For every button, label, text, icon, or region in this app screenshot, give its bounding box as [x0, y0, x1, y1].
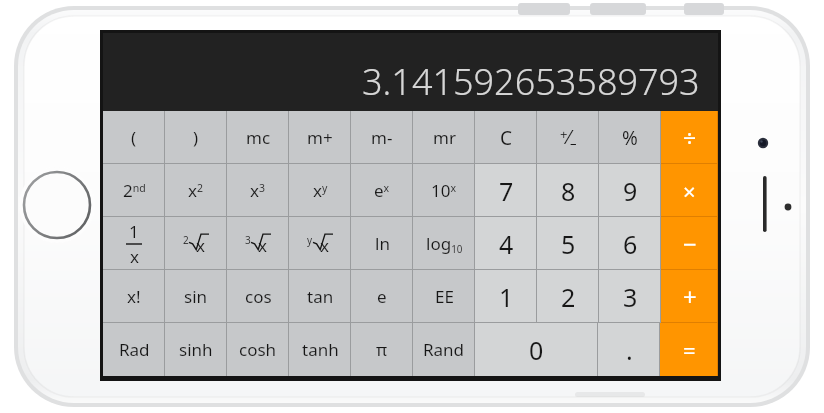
staticText: ÷ [683, 122, 697, 153]
staticText: xy [313, 179, 328, 202]
button[interactable]: EE [413, 270, 475, 323]
staticText: cosh [239, 338, 277, 361]
staticText: ex [374, 179, 390, 202]
staticText: 3 [623, 280, 638, 314]
button[interactable]: e [351, 270, 413, 323]
staticText: tanh [302, 338, 339, 361]
staticText: Rad [119, 338, 150, 361]
staticText: x! [127, 285, 141, 308]
button[interactable]: 10x [413, 164, 475, 217]
staticText: Rand [423, 338, 465, 361]
button[interactable]: × [661, 164, 718, 217]
staticText: × [683, 176, 696, 206]
button[interactable]: log10 [413, 217, 475, 270]
staticText: log10 [426, 232, 463, 256]
button[interactable]: ln [351, 217, 413, 270]
button[interactable]: cos [227, 270, 289, 323]
button[interactable]: 6 [599, 217, 661, 270]
staticText: sin [184, 285, 208, 308]
button[interactable]: cosh [227, 323, 289, 376]
staticText: % [622, 125, 638, 151]
button[interactable]: ex [351, 164, 413, 217]
staticText: mc [246, 126, 271, 149]
button[interactable]: 2 [165, 217, 227, 270]
staticText: EE [435, 285, 454, 308]
button[interactable]: mc [227, 111, 289, 164]
button[interactable]: ( [103, 111, 165, 164]
button[interactable]: y [289, 217, 351, 270]
button[interactable]: ) [165, 111, 227, 164]
button[interactable]: 5 [537, 217, 599, 270]
button[interactable]: − [661, 217, 718, 270]
button[interactable]: +⁄– [537, 111, 599, 164]
staticText: = [683, 335, 696, 365]
button[interactable]: x! [103, 270, 165, 323]
staticText: m+ [307, 126, 333, 149]
button[interactable]: 0 [475, 323, 598, 376]
button[interactable]: mr [413, 111, 475, 164]
staticText: . [626, 333, 633, 367]
staticText: 3.141592653589793 [362, 57, 700, 106]
button[interactable]: m+ [289, 111, 351, 164]
staticText: C [500, 125, 513, 151]
button[interactable]: . [598, 323, 660, 376]
staticText: 4 [499, 227, 514, 261]
button[interactable]: sin [165, 270, 227, 323]
staticText: 2 [561, 280, 576, 314]
button[interactable]: 8 [537, 164, 599, 217]
staticText: y [307, 233, 313, 247]
button[interactable]: Rand [413, 323, 475, 376]
staticText: − [683, 227, 697, 260]
button[interactable]: Rad [103, 323, 165, 376]
staticText: 1 [499, 280, 514, 314]
staticText: +⁄– [560, 124, 577, 152]
staticText: sinh [179, 338, 213, 361]
button[interactable]: sinh [165, 323, 227, 376]
staticText: ln [375, 232, 390, 255]
staticText: π [376, 338, 388, 361]
button[interactable]: 4 [475, 217, 537, 270]
button[interactable]: x2 [165, 164, 227, 217]
staticText: mr [433, 126, 456, 149]
staticText: x [320, 234, 329, 257]
button[interactable]: % [599, 111, 661, 164]
button[interactable]: 9 [599, 164, 661, 217]
staticText: x2 [188, 179, 204, 202]
button[interactable]: 7 [475, 164, 537, 217]
staticText: 8 [561, 174, 576, 208]
staticText: tan [307, 285, 334, 308]
staticText: 2 [183, 233, 189, 247]
staticText: x [130, 245, 139, 268]
staticText: 9 [623, 174, 638, 208]
staticText: x3 [250, 179, 266, 202]
button[interactable]: 2 [537, 270, 599, 323]
staticText: cos [245, 285, 272, 308]
staticText: e [377, 285, 387, 308]
button[interactable]: tanh [289, 323, 351, 376]
staticText: ) [193, 126, 199, 149]
button[interactable]: tan [289, 270, 351, 323]
button[interactable]: 3 [599, 270, 661, 323]
button[interactable]: C [475, 111, 537, 164]
staticText: + [683, 280, 697, 313]
staticText: 7 [499, 174, 514, 208]
staticText: m- [371, 126, 393, 149]
button[interactable]: 1 [103, 217, 165, 270]
button[interactable]: xy [289, 164, 351, 217]
button[interactable]: m- [351, 111, 413, 164]
button[interactable]: 2nd [103, 164, 165, 217]
button[interactable]: + [661, 270, 718, 323]
button[interactable]: ÷ [661, 111, 718, 164]
button[interactable]: 1 [475, 270, 537, 323]
button[interactable]: = [660, 323, 718, 376]
staticText: 1 [129, 220, 139, 243]
staticText: ( [131, 126, 137, 149]
button[interactable]: π [351, 323, 413, 376]
staticText: 6 [623, 227, 638, 261]
staticText: 5 [561, 227, 576, 261]
staticText: x [258, 234, 267, 257]
staticText: 3 [245, 233, 251, 247]
button[interactable]: x3 [227, 164, 289, 217]
staticText: 0 [529, 333, 544, 367]
button[interactable]: 3 [227, 217, 289, 270]
